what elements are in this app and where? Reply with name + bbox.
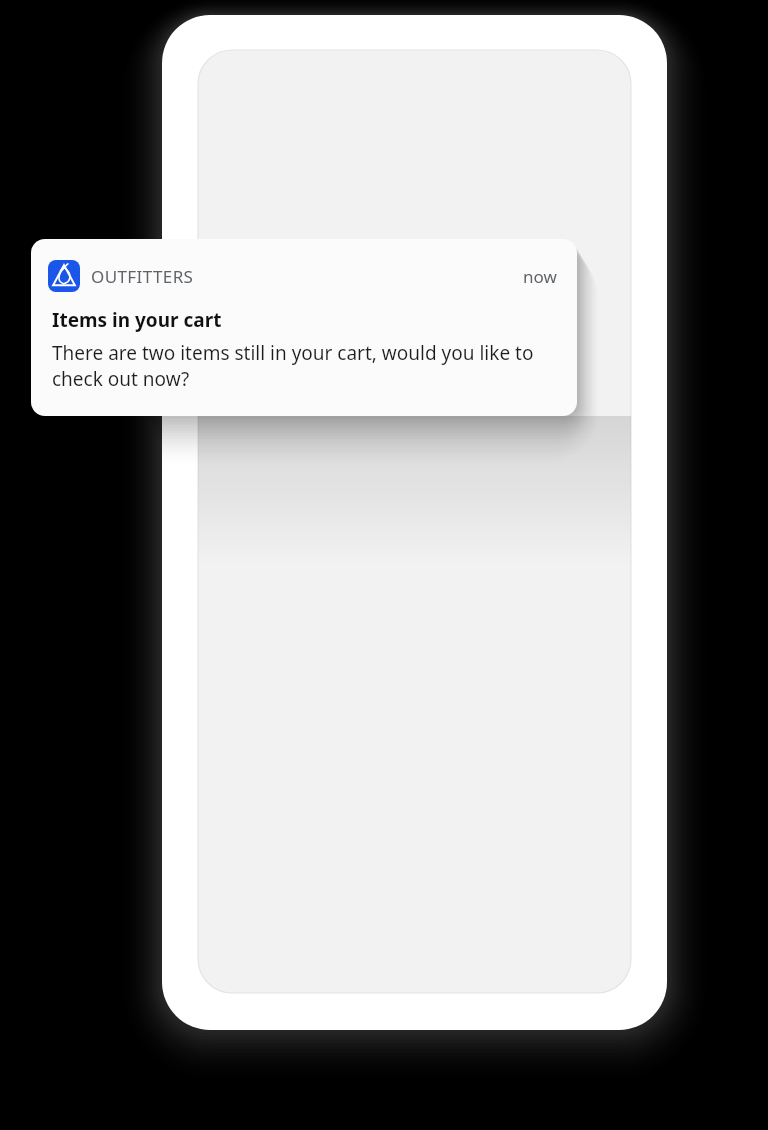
button[interactable]: Outfitters: [31, 239, 577, 416]
staticText: There are two items still in your cart, …: [52, 340, 555, 392]
staticText: now: [523, 265, 557, 288]
other: Outfitters: [48, 260, 80, 292]
staticText: OUTFITTERS: [91, 265, 194, 288]
staticText: Items in your cart: [52, 307, 222, 333]
